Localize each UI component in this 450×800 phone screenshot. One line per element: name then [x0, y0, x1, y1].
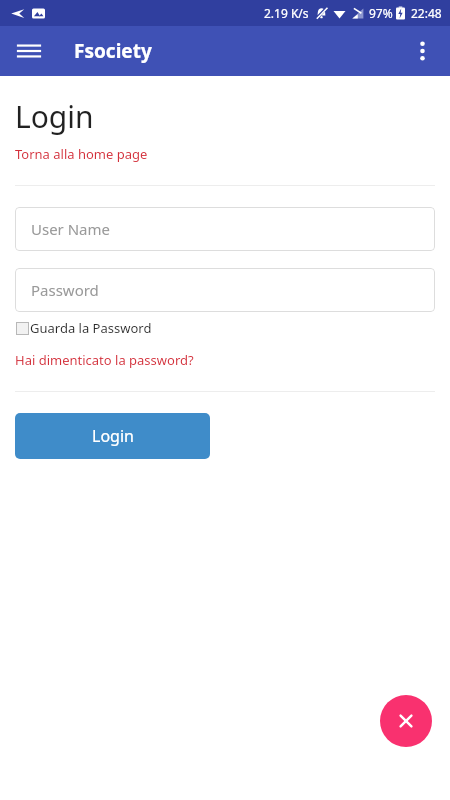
- button[interactable]: Close: [380, 695, 432, 747]
- button[interactable]: Hai dimenticato la password?: [15, 351, 194, 369]
- staticText: 97%: [369, 5, 393, 21]
- staticText: 22:48: [411, 5, 442, 21]
- staticText: Password: [31, 280, 99, 300]
- staticText: 2.19 K/s: [264, 5, 309, 21]
- button[interactable]: Open navigation menu: [8, 30, 50, 72]
- staticText: Hai dimenticato la password?: [15, 351, 194, 369]
- button[interactable]: Password: [15, 268, 435, 312]
- button[interactable]: More options: [401, 30, 443, 72]
- staticText: Login: [92, 425, 134, 447]
- button[interactable]: Guarda la Password: [16, 319, 152, 337]
- staticText: Guarda la Password: [30, 319, 152, 337]
- staticText: User Name: [31, 219, 111, 239]
- staticText: Torna alla home page: [15, 145, 148, 163]
- button[interactable]: User Name: [15, 207, 435, 251]
- button[interactable]: Torna alla home page: [15, 145, 148, 163]
- staticText: Login: [15, 96, 94, 137]
- staticText: Fsociety: [74, 38, 152, 64]
- button[interactable]: Login: [15, 413, 210, 459]
